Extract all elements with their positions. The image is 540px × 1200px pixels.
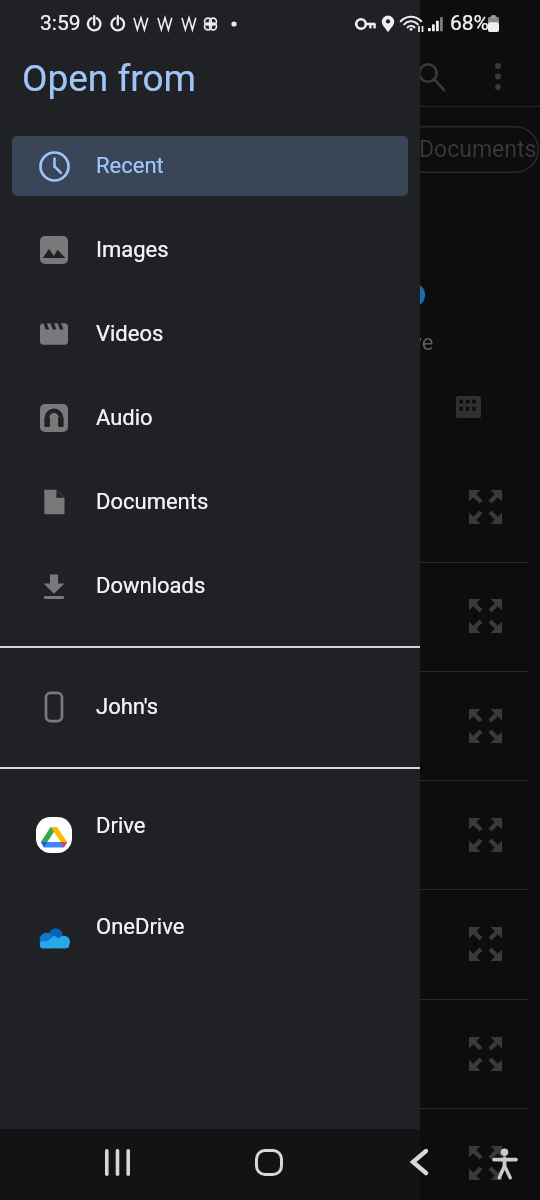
button[interactable]: Drive	[0, 796, 420, 856]
button[interactable]: Back	[382, 1129, 456, 1200]
staticText: Documents	[419, 136, 537, 163]
button[interactable]: Recent	[0, 136, 420, 196]
button[interactable]: Documents	[0, 472, 420, 532]
staticText: 3:59	[40, 11, 81, 36]
staticText: Audio	[96, 405, 153, 431]
staticText: Documents	[96, 489, 209, 515]
button[interactable]: Audio	[0, 388, 420, 448]
button[interactable]: Home	[232, 1129, 306, 1200]
button[interactable]: Images	[0, 220, 420, 280]
button[interactable]	[12, 136, 408, 196]
button[interactable]: Videos	[0, 304, 420, 364]
button[interactable]: Recents	[80, 1129, 154, 1200]
staticText: Open from	[22, 57, 197, 100]
staticText: Drive	[96, 813, 146, 839]
button[interactable]: OneDrive	[0, 897, 420, 957]
button[interactable]: Accessibility	[470, 1137, 526, 1193]
button[interactable]: John's	[0, 677, 420, 737]
button[interactable]: Downloads	[0, 556, 420, 616]
staticText: John's	[96, 694, 159, 720]
staticText: Downloads	[96, 573, 206, 599]
staticText: Recent	[96, 153, 164, 179]
staticText: 68%	[450, 11, 489, 36]
staticText: ive	[406, 330, 434, 356]
staticText: Videos	[96, 321, 164, 347]
staticText: OneDrive	[96, 914, 185, 940]
staticText: Images	[96, 237, 169, 263]
